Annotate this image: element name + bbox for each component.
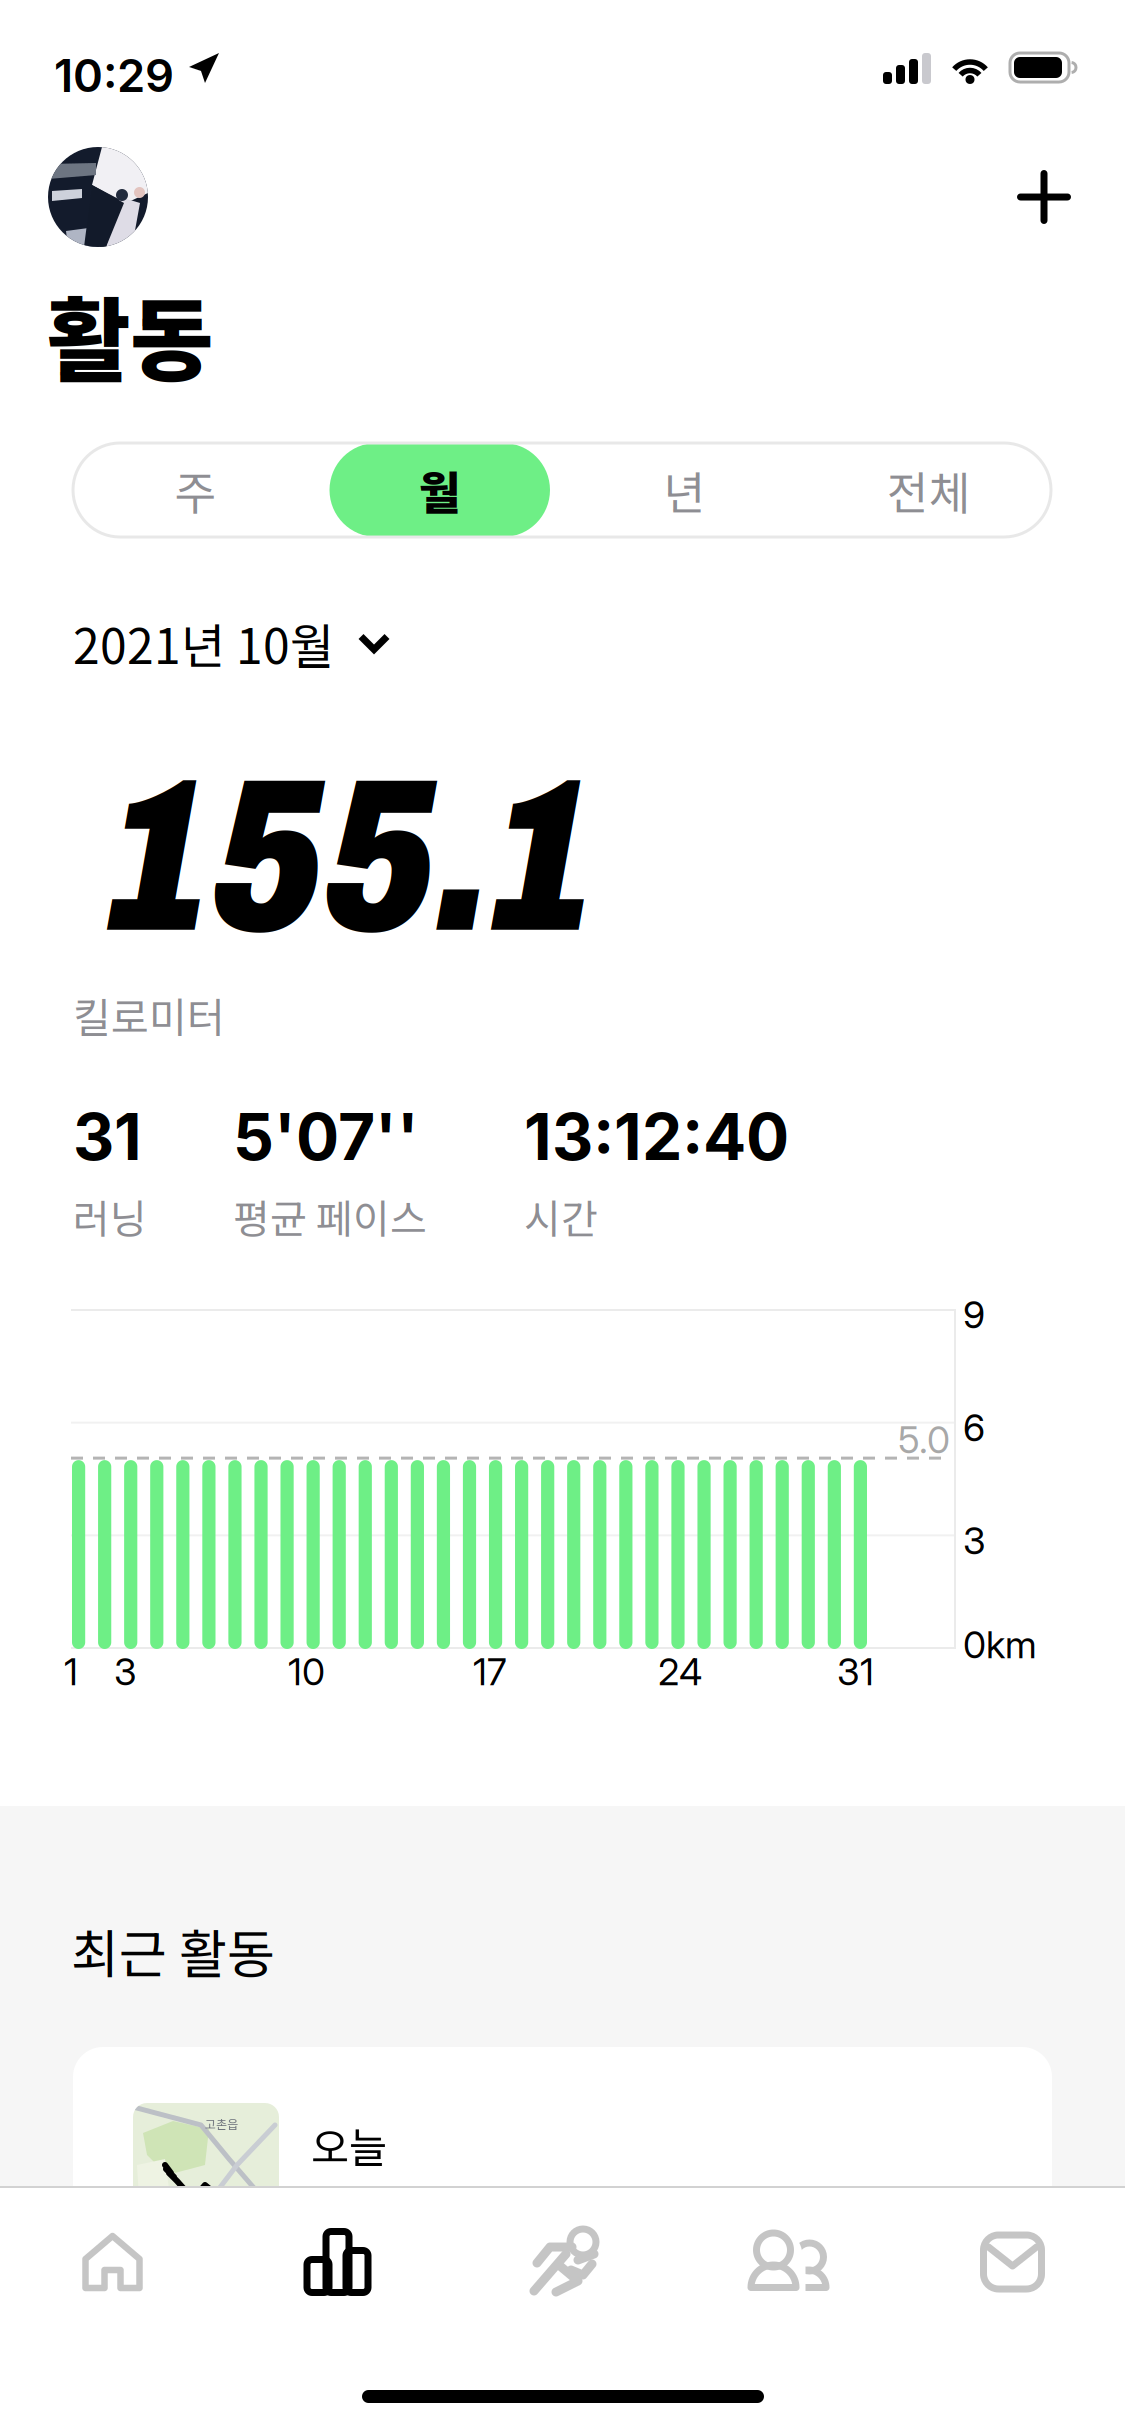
staticText: 3 [963, 1518, 986, 1563]
button[interactable]: 고촌읍 [73, 2047, 1052, 2347]
button[interactable]: Home [0, 2188, 225, 2336]
button[interactable]: Activity [225, 2188, 450, 2336]
staticText: 시간 [524, 1187, 598, 1245]
staticText: 13:12:40 [524, 1098, 789, 1175]
button[interactable]: 월 [317, 443, 562, 537]
staticText: 31 [73, 1098, 142, 1175]
staticText: 17 [473, 1649, 507, 1694]
staticText: 전체 [887, 457, 971, 523]
staticText: 5.0 [898, 1417, 950, 1462]
staticText: 31 [837, 1649, 874, 1694]
staticText: 24 [658, 1649, 702, 1694]
staticText: 오늘 [311, 2115, 387, 2175]
staticText: 러닝 [73, 1187, 147, 1245]
button[interactable]: 주 [73, 443, 317, 537]
button[interactable]: Add activity [976, 129, 1112, 265]
staticText: 고촌읍 [205, 2115, 238, 2132]
staticText: 최근 활동 [71, 1913, 275, 1988]
staticText: 10 [288, 1649, 325, 1694]
button[interactable]: Run [450, 2188, 675, 2336]
staticText: 월 [419, 457, 461, 523]
staticText: 5'07'' [233, 1098, 419, 1175]
button[interactable]: Inbox [900, 2188, 1125, 2336]
staticText: 주 [174, 457, 216, 523]
staticText: 2021년 10월 [73, 608, 334, 678]
staticText: 155.1 [109, 739, 596, 975]
button[interactable]: 전체 [806, 443, 1051, 537]
staticText: 년 [663, 457, 705, 523]
staticText: 6 [963, 1405, 985, 1450]
button[interactable]: Club [675, 2188, 900, 2336]
staticText: 킬로미터 [73, 985, 225, 1045]
staticText: 활동 [47, 268, 213, 399]
staticText: 1 [64, 1649, 78, 1694]
staticText: 3 [114, 1649, 137, 1694]
button[interactable]: 년 [562, 443, 806, 537]
staticText: 0km [963, 1622, 1037, 1667]
staticText: 9 [963, 1292, 985, 1337]
button[interactable]: 2021년 10월 [73, 608, 390, 678]
staticText: 평균 페이스 [233, 1187, 427, 1245]
button[interactable]: Profile [48, 147, 148, 247]
staticText: 10:29 [54, 48, 174, 103]
